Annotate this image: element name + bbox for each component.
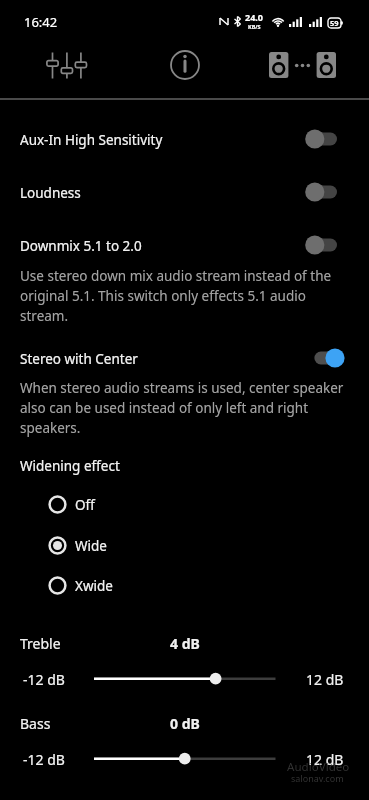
button[interactable]: Aux-In High Sensitivity: [0, 122, 369, 158]
button[interactable]: Bass: [88, 747, 281, 771]
staticText: Widening effect: [20, 457, 120, 475]
button[interactable]: Wide: [0, 525, 369, 566]
button[interactable]: Treble: [88, 667, 281, 691]
staticText: 4 dB: [170, 634, 200, 653]
staticText: Xwide: [75, 577, 113, 595]
staticText: Downmix 5.1 to 2.0: [20, 237, 142, 255]
staticText: Treble: [20, 634, 61, 653]
staticText: Bass: [20, 714, 51, 733]
staticText: Use stereo down mix audio stream instead…: [20, 267, 347, 325]
staticText: When stereo audio streams is used, cente…: [20, 379, 347, 437]
staticText: Wide: [75, 537, 107, 555]
staticText: Aux-In High Sensitivity: [20, 131, 163, 149]
staticText: 12 dB: [306, 750, 344, 769]
staticText: AudioVideo: [287, 759, 350, 775]
button[interactable]: Loudness: [0, 175, 369, 211]
staticText: 0 dB: [170, 714, 200, 733]
staticText: KB/S: [248, 23, 261, 30]
staticText: 12 dB: [306, 670, 344, 689]
staticText: -12 dB: [23, 670, 65, 689]
staticText: 59: [330, 18, 339, 28]
staticText: 16:42: [24, 13, 58, 31]
button[interactable]: Off: [0, 484, 369, 525]
button[interactable]: Downmix 5.1 to 2.0: [0, 228, 369, 264]
button[interactable]: Xwide: [0, 565, 369, 606]
staticText: Loudness: [20, 184, 81, 202]
staticText: salonav.com: [291, 772, 344, 784]
staticText: Stereo with Center: [20, 350, 138, 368]
button[interactable]: Information: [138, 36, 231, 94]
staticText: 24.0: [245, 11, 263, 23]
staticText: Off: [75, 496, 95, 514]
button[interactable]: Stereo with Center: [0, 341, 369, 377]
button[interactable]: Speakers: [256, 36, 349, 94]
button[interactable]: Equalizer: [20, 36, 113, 94]
staticText: -12 dB: [23, 750, 65, 769]
